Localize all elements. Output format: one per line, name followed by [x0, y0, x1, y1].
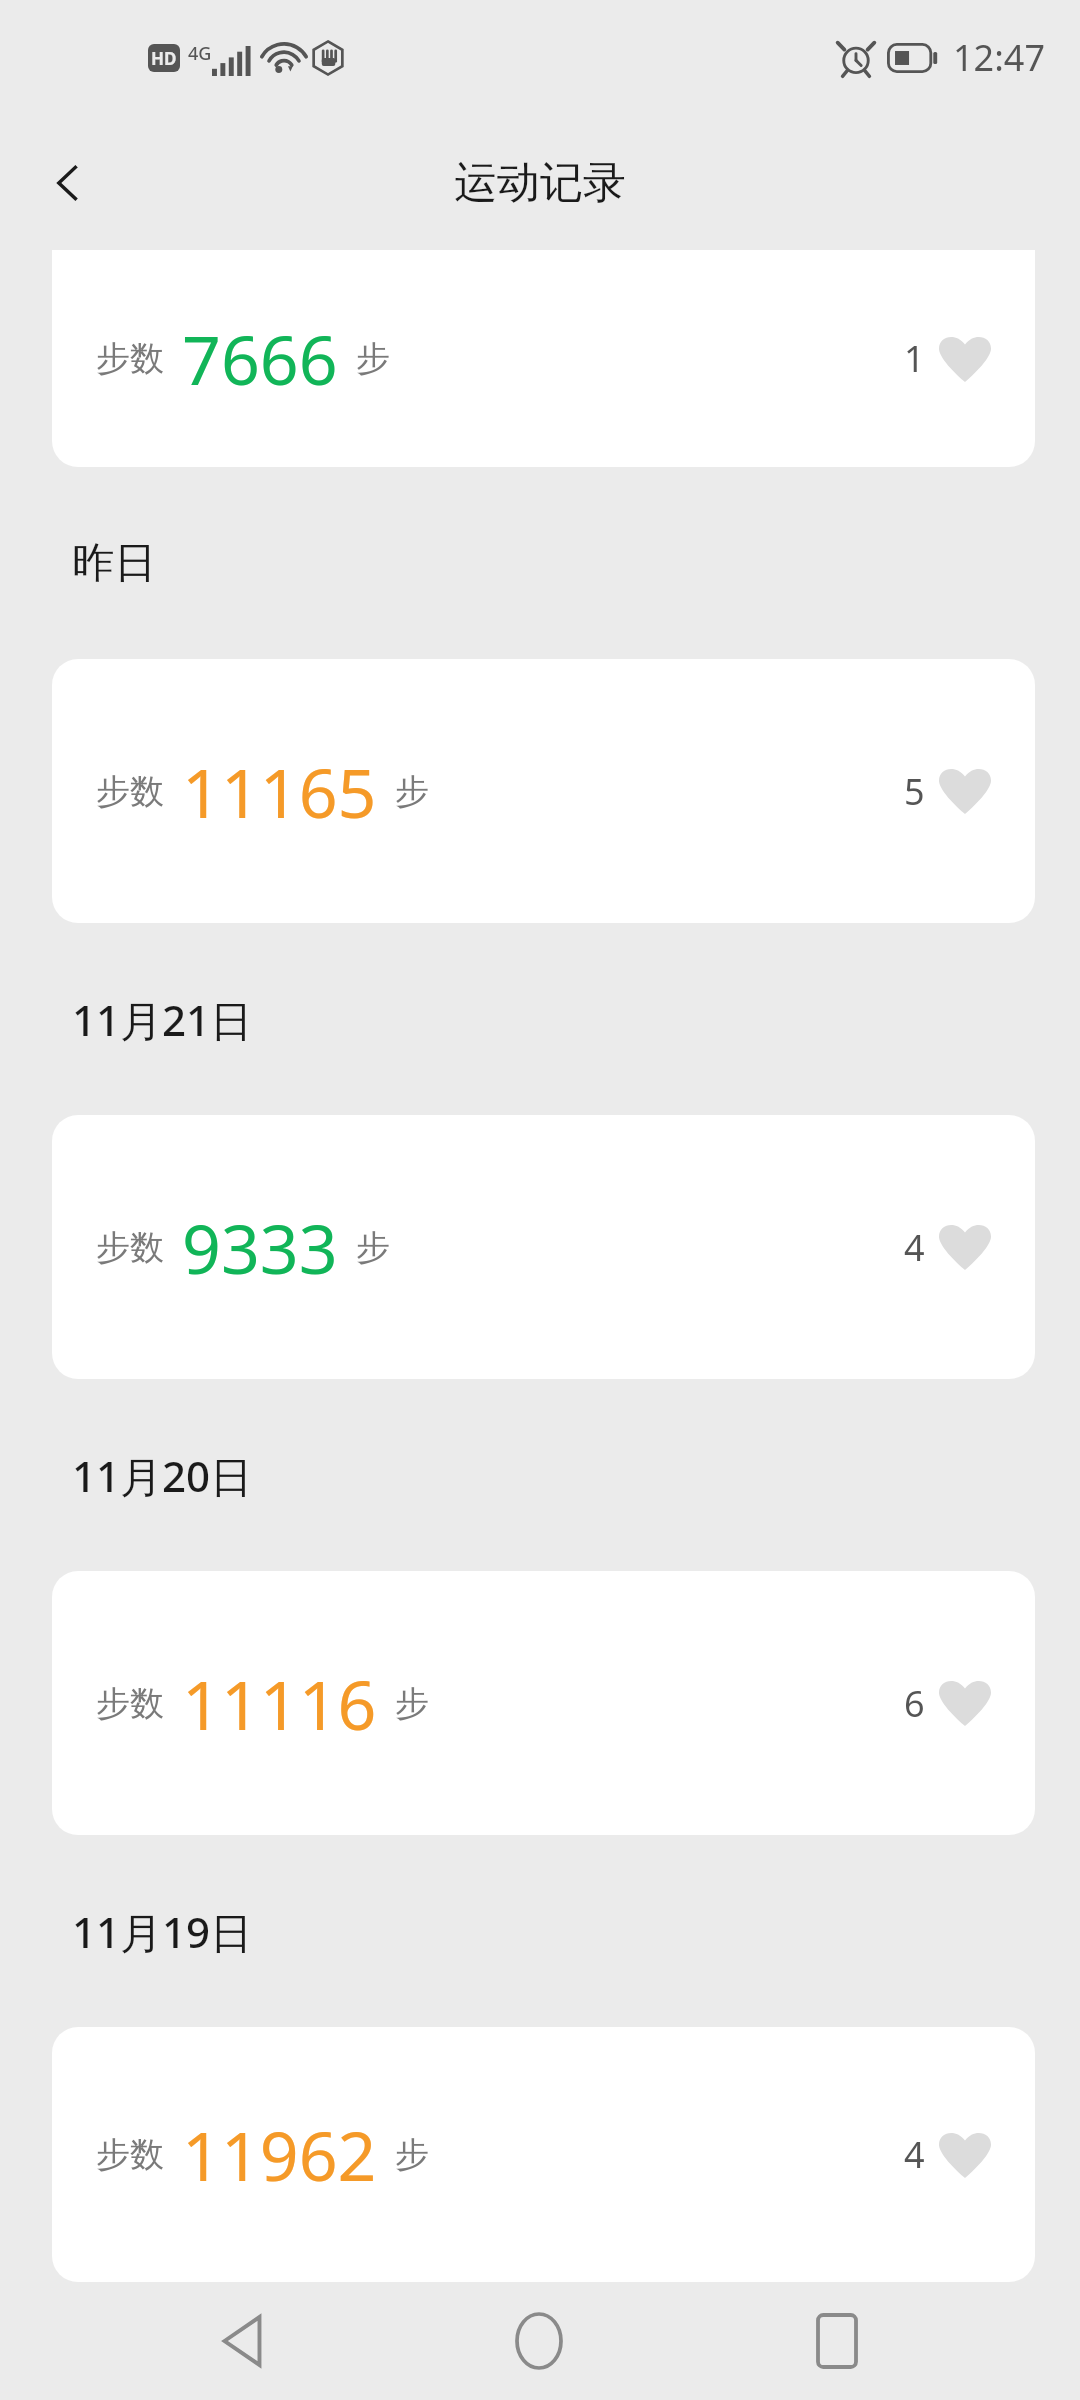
- staticText: 11165: [182, 745, 377, 838]
- button[interactable]: Recent apps: [782, 2286, 892, 2396]
- staticText: 12:47: [953, 33, 1046, 82]
- button[interactable]: Back: [20, 135, 116, 231]
- button[interactable]: Home: [484, 2286, 594, 2396]
- staticText: 1: [904, 334, 925, 383]
- staticText: 11月20日: [72, 1447, 253, 1504]
- staticText: 步: [395, 1682, 429, 1725]
- staticText: 9333: [182, 1201, 338, 1294]
- button[interactable]: 步数: [52, 659, 1035, 923]
- staticText: 4G: [188, 41, 212, 66]
- button[interactable]: 步数: [52, 1571, 1035, 1835]
- staticText: 步数: [96, 2133, 164, 2176]
- button[interactable]: 步数: [52, 250, 1035, 467]
- staticText: 运动记录: [454, 156, 626, 210]
- staticText: 步数: [96, 1682, 164, 1725]
- staticText: 步: [356, 1226, 390, 1269]
- staticText: 7666: [182, 312, 338, 405]
- staticText: 步数: [96, 337, 164, 380]
- staticText: 昨日: [72, 537, 156, 590]
- staticText: 4: [904, 1223, 925, 1272]
- button[interactable]: 步数: [52, 1115, 1035, 1379]
- staticText: 11月21日: [72, 991, 253, 1048]
- staticText: 11116: [182, 1657, 377, 1750]
- button[interactable]: Back: [187, 2286, 297, 2396]
- staticText: 4: [904, 2130, 925, 2179]
- staticText: 步: [395, 770, 429, 813]
- staticText: 11962: [182, 2108, 377, 2201]
- button[interactable]: 步数: [52, 2027, 1035, 2282]
- staticText: 步: [395, 2133, 429, 2176]
- staticText: 5: [904, 767, 925, 816]
- staticText: 步: [356, 337, 390, 380]
- staticText: 步数: [96, 770, 164, 813]
- staticText: 步数: [96, 1226, 164, 1269]
- staticText: 11月19日: [72, 1903, 253, 1960]
- staticText: 6: [904, 1679, 925, 1728]
- staticText: HD: [151, 47, 177, 70]
